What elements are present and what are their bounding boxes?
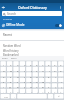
button[interactable]: More options xyxy=(57,4,64,11)
button[interactable]: . xyxy=(52,79,58,84)
button[interactable]: Period xyxy=(48,94,54,99)
staticText: - xyxy=(3,90,4,93)
button[interactable]: 6 xyxy=(34,61,40,67)
button[interactable]: t xyxy=(28,67,34,73)
button[interactable]: 9 xyxy=(52,61,58,67)
staticText: Bookmarked xyxy=(3,53,19,56)
staticText: i xyxy=(49,69,50,72)
button[interactable]: k xyxy=(46,73,52,79)
staticText: = xyxy=(17,90,19,93)
button[interactable]: & xyxy=(40,84,46,89)
staticText: u xyxy=(42,69,44,72)
staticText: c xyxy=(17,80,19,83)
button[interactable]: j xyxy=(40,73,46,79)
staticText: h xyxy=(36,75,38,78)
button[interactable]: Navigate up xyxy=(0,4,7,11)
button[interactable]: x xyxy=(7,79,14,84)
button[interactable]: r xyxy=(21,67,28,73)
button[interactable]: ' xyxy=(58,73,64,79)
button[interactable]: f xyxy=(21,73,28,79)
button[interactable]: o xyxy=(52,67,58,73)
button[interactable]: Comma xyxy=(11,94,17,99)
button[interactable]: m xyxy=(40,79,46,84)
button[interactable]: ? xyxy=(46,89,52,94)
button[interactable]: s xyxy=(7,73,14,79)
button[interactable]: 0 xyxy=(58,61,64,67)
staticText: Search xyxy=(7,12,17,16)
button[interactable]: - xyxy=(0,89,7,94)
button[interactable]: Word history xyxy=(0,48,64,53)
button[interactable]: i xyxy=(46,67,52,73)
button[interactable]: / xyxy=(58,79,64,84)
button[interactable]: + xyxy=(7,89,14,94)
button[interactable]: ^ xyxy=(34,84,40,89)
button[interactable]: $ xyxy=(21,84,28,89)
staticText: t xyxy=(31,69,32,72)
button[interactable]: Offline Mode xyxy=(0,21,64,29)
button[interactable]: y xyxy=(34,67,40,73)
staticText: m xyxy=(42,80,45,83)
button[interactable]: @ xyxy=(7,84,14,89)
button[interactable]: ~ xyxy=(40,89,46,94)
staticText: j xyxy=(43,75,44,78)
button[interactable]: n xyxy=(34,79,40,84)
staticText: Offline Mode xyxy=(6,23,25,27)
button[interactable]: _ xyxy=(21,89,28,94)
button[interactable]: v xyxy=(21,79,28,84)
button[interactable]: # xyxy=(14,84,21,89)
button[interactable]: ; xyxy=(34,89,40,94)
button[interactable]: ( xyxy=(52,84,58,89)
button[interactable]: = xyxy=(14,89,21,94)
button[interactable]: q xyxy=(0,67,7,73)
button[interactable]: p xyxy=(58,67,64,73)
button[interactable]: Space xyxy=(17,94,48,99)
staticText: _ xyxy=(24,90,26,93)
button[interactable]: Search key xyxy=(54,94,64,99)
button[interactable]: Bookmarked xyxy=(0,53,64,56)
staticText: ( xyxy=(55,85,56,88)
button[interactable]: Symbols xyxy=(0,94,11,99)
button[interactable]: 7 xyxy=(40,61,46,67)
button[interactable]: e xyxy=(14,67,21,73)
staticText: Recent xyxy=(3,33,12,37)
staticText: g xyxy=(30,75,32,78)
button[interactable]: 2 xyxy=(7,61,14,67)
button[interactable]: % xyxy=(28,84,34,89)
button[interactable]: h xyxy=(34,73,40,79)
button[interactable]: w xyxy=(7,67,14,73)
button[interactable]: Search xyxy=(2,11,62,16)
staticText: & xyxy=(42,85,44,88)
staticText: y xyxy=(36,69,38,72)
button[interactable]: Random Word xyxy=(0,43,64,48)
staticText: p xyxy=(60,69,62,72)
button[interactable]: 1 xyxy=(0,61,7,67)
staticText: s xyxy=(10,75,12,78)
button[interactable]: d xyxy=(14,73,21,79)
staticText: ! xyxy=(3,85,4,88)
staticText: 1 xyxy=(3,63,5,66)
button[interactable]: a xyxy=(0,73,7,79)
button[interactable]: g xyxy=(28,73,34,79)
button[interactable]: 4 xyxy=(21,61,28,67)
button[interactable]: > xyxy=(58,89,64,94)
button[interactable]: b xyxy=(28,79,34,84)
button[interactable]: , xyxy=(46,79,52,84)
staticText: w xyxy=(10,69,12,72)
button[interactable]: ) xyxy=(58,84,64,89)
button[interactable]: 5 xyxy=(28,61,34,67)
button[interactable]: ! xyxy=(0,84,7,89)
button[interactable]: < xyxy=(52,89,58,94)
button[interactable]: 8 xyxy=(46,61,52,67)
button[interactable]: Offline mode toggle xyxy=(55,24,62,27)
button[interactable]: * xyxy=(46,84,52,89)
button[interactable]: : xyxy=(28,89,34,94)
staticText: $ xyxy=(24,85,26,88)
staticText: @ xyxy=(9,85,12,88)
staticText: 0 xyxy=(60,63,62,66)
button[interactable]: u xyxy=(40,67,46,73)
button[interactable]: c xyxy=(14,79,21,84)
button[interactable]: l xyxy=(52,73,58,79)
staticText: 5 xyxy=(30,63,32,66)
button[interactable]: 3 xyxy=(14,61,21,67)
button[interactable]: z xyxy=(0,79,7,84)
